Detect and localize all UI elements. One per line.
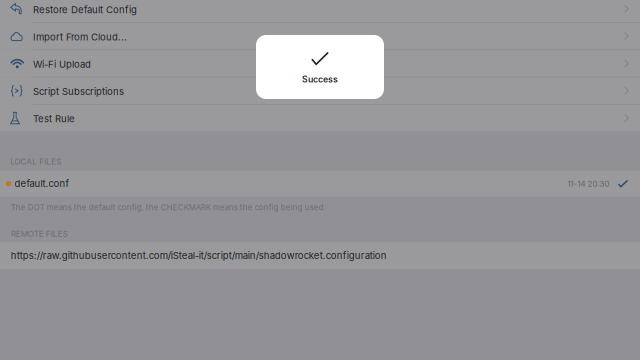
button[interactable]: Restore Default Config — [0, 0, 640, 22]
staticText: Wi-Fi Upload — [33, 58, 91, 70]
button[interactable]: Script Subscriptions — [0, 77, 640, 104]
staticText: Script Subscriptions — [33, 86, 124, 97]
staticText: default.conf — [15, 178, 70, 189]
staticText: Import From Cloud... — [33, 31, 127, 43]
button[interactable]: Test Rule — [0, 105, 640, 131]
button[interactable]: https://raw.githubusercontent.com/iSteal… — [0, 242, 640, 269]
staticText: Test Rule — [33, 113, 75, 125]
staticText: LOCAL FILES — [10, 156, 61, 166]
button[interactable]: default.conf — [0, 171, 640, 197]
button[interactable]: Import From Cloud... — [0, 23, 640, 49]
staticText: 11-14 20:30 — [567, 179, 609, 189]
staticText: Success — [302, 74, 338, 85]
staticText: Restore Default Config — [33, 4, 137, 15]
staticText: https://raw.githubusercontent.com/iSteal… — [11, 250, 387, 261]
button[interactable]: Wi-Fi Upload — [0, 50, 640, 77]
staticText: REMOTE FILES — [11, 229, 68, 239]
staticText: The DOT means the default config, the CH… — [11, 203, 326, 212]
